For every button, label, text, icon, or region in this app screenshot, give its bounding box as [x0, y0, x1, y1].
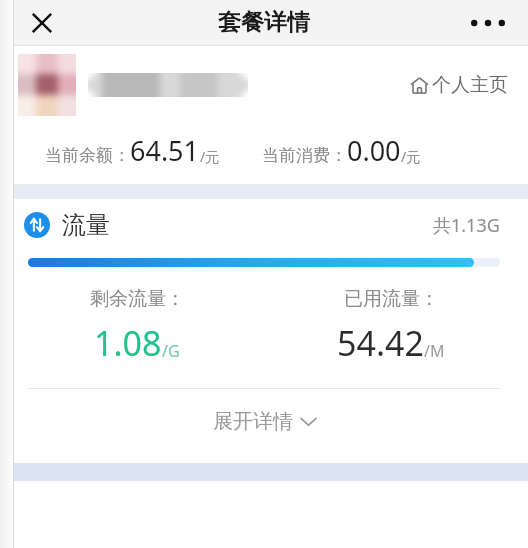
staticText: 54.42 — [337, 320, 424, 366]
staticText: /元 — [401, 147, 421, 166]
staticText: 展开详情 — [213, 409, 293, 434]
button[interactable]: More options — [464, 0, 512, 45]
staticText: /G — [162, 340, 180, 362]
staticText: 已用流量： — [344, 287, 439, 311]
staticText: /M — [424, 340, 445, 362]
button[interactable]: 个人主页 — [408, 67, 510, 103]
button[interactable]: 展开详情 — [0, 389, 528, 453]
staticText: 64.51 — [130, 132, 200, 169]
staticText: 流量 — [62, 210, 110, 240]
staticText: /元 — [200, 147, 220, 166]
staticText: 共1.13G — [433, 213, 500, 238]
staticText: 套餐详情 — [218, 8, 310, 37]
staticText: 个人主页 — [432, 73, 508, 97]
button[interactable]: 个人主页 — [0, 46, 528, 124]
staticText: 当前消费： — [262, 145, 347, 166]
staticText: 当前余额： — [45, 145, 130, 166]
staticText: 1.08 — [94, 320, 162, 366]
staticText: 剩余流量： — [90, 287, 185, 311]
staticText: 0.00 — [347, 132, 401, 169]
button[interactable]: Close — [20, 1, 64, 45]
button[interactable]: 流量 — [0, 199, 528, 251]
